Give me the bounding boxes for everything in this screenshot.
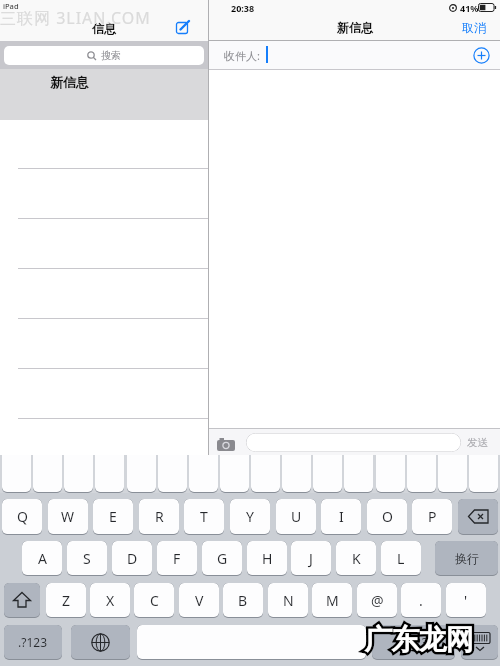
button[interactable] (213, 434, 239, 454)
staticText: 新信息 (50, 74, 89, 90)
button[interactable]: . (401, 583, 441, 618)
button[interactable] (376, 455, 405, 493)
staticText: R (155, 507, 164, 526)
button[interactable] (127, 455, 156, 493)
button[interactable]: E (93, 499, 133, 535)
button[interactable] (172, 17, 194, 37)
staticText: W (61, 507, 75, 526)
staticText: I (339, 507, 344, 526)
button[interactable]: R (139, 499, 179, 535)
staticText: U (291, 507, 302, 526)
staticText: 41% (460, 2, 479, 14)
staticText: 信息 (92, 21, 116, 36)
button[interactable] (220, 455, 249, 493)
button[interactable]: Q (2, 499, 42, 535)
button[interactable]: H (247, 541, 287, 576)
staticText: L (397, 549, 405, 568)
button[interactable] (95, 455, 124, 493)
button[interactable] (469, 455, 498, 493)
button[interactable] (313, 455, 342, 493)
staticText: 发送 (467, 436, 488, 449)
button[interactable]: N (268, 583, 308, 618)
button[interactable]: W (48, 499, 88, 535)
staticText: Z (62, 591, 71, 610)
staticText: G (217, 549, 228, 568)
button[interactable]: I (321, 499, 361, 535)
button[interactable] (282, 455, 311, 493)
staticText: E (109, 507, 117, 526)
staticText: 20:38 (231, 2, 255, 14)
button[interactable] (246, 433, 461, 452)
button[interactable]: .?123 (372, 625, 455, 660)
staticText: Y (246, 507, 254, 526)
staticText: K (352, 549, 361, 568)
button[interactable]: T (184, 499, 224, 535)
staticText: T (200, 507, 208, 526)
button[interactable] (251, 455, 280, 493)
button[interactable]: U (276, 499, 316, 535)
button[interactable] (158, 455, 187, 493)
staticText: 广东龙网 (365, 622, 473, 657)
staticText: iPad (3, 1, 19, 11)
staticText: X (106, 591, 115, 610)
button[interactable]: 换行 (435, 541, 498, 576)
button[interactable]: S (67, 541, 107, 576)
button[interactable] (461, 625, 498, 660)
button[interactable] (189, 455, 218, 493)
button[interactable] (4, 583, 40, 618)
button[interactable]: 取消 (452, 15, 496, 39)
button[interactable]: @ (357, 583, 397, 618)
button[interactable]: .?123 (4, 625, 62, 660)
staticText: 新信息 (337, 20, 373, 35)
button[interactable]: Y (230, 499, 270, 535)
staticText: @ (371, 591, 384, 610)
button[interactable]: K (336, 541, 376, 576)
staticText: B (238, 591, 248, 610)
staticText: 广东龙网 (365, 622, 473, 657)
button[interactable]: B (223, 583, 263, 618)
button[interactable]: G (202, 541, 242, 576)
button[interactable] (33, 455, 62, 493)
staticText: 收件人: (224, 48, 260, 63)
staticText: . (419, 591, 423, 610)
button[interactable] (344, 455, 373, 493)
button[interactable]: 搜索 (4, 46, 204, 65)
button[interactable] (469, 43, 493, 67)
staticText: C (150, 591, 159, 610)
button[interactable]: P (412, 499, 452, 535)
button[interactable]: D (112, 541, 152, 576)
button[interactable] (407, 455, 436, 493)
button[interactable]: X (90, 583, 130, 618)
button[interactable] (71, 625, 130, 660)
button[interactable]: Z (46, 583, 86, 618)
staticText: V (195, 591, 204, 610)
staticText: F (173, 549, 181, 568)
staticText: .?123 (399, 634, 429, 650)
button[interactable] (2, 455, 31, 493)
button[interactable]: V (179, 583, 219, 618)
staticText: Q (17, 507, 28, 526)
button[interactable]: A (22, 541, 62, 576)
button[interactable] (438, 455, 467, 493)
staticText: 换行 (455, 551, 479, 566)
button[interactable] (137, 625, 366, 660)
staticText: .?123 (18, 634, 48, 650)
button[interactable]: ' (446, 583, 486, 618)
button[interactable]: C (134, 583, 174, 618)
staticText: D (127, 549, 138, 568)
staticText: 取消 (462, 20, 486, 35)
button[interactable]: J (291, 541, 331, 576)
button[interactable]: 新信息 (0, 69, 208, 120)
staticText: 三联网 3LIAN.COM (0, 7, 151, 29)
button[interactable]: L (381, 541, 421, 576)
button[interactable]: M (312, 583, 352, 618)
button[interactable] (64, 455, 93, 493)
staticText: ' (464, 591, 468, 610)
staticText: P (428, 507, 437, 526)
staticText: M (326, 591, 339, 610)
button[interactable]: O (367, 499, 407, 535)
button[interactable] (209, 41, 500, 69)
button[interactable] (458, 499, 498, 535)
button[interactable]: F (157, 541, 197, 576)
button[interactable]: 发送 (461, 433, 493, 452)
